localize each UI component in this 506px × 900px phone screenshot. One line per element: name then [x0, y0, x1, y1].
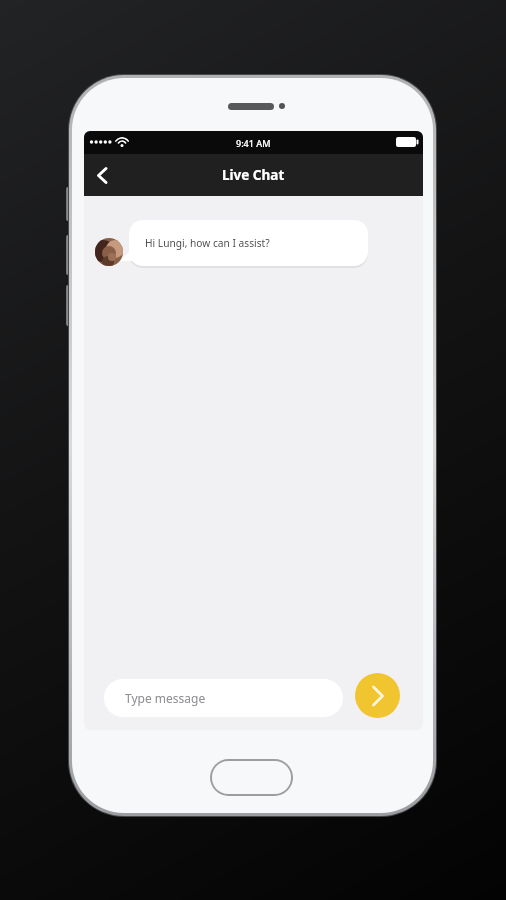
- staticText: 9:41 AM: [236, 137, 271, 149]
- staticText: Type message: [125, 690, 206, 706]
- button[interactable]: [86, 159, 118, 191]
- staticText: Hi Lungi, how can I assist?: [145, 236, 270, 250]
- button[interactable]: Type message: [104, 679, 343, 717]
- button[interactable]: Hi Lungi, how can I assist?: [129, 220, 368, 266]
- staticText: Live Chat: [222, 166, 285, 184]
- button[interactable]: [355, 673, 400, 718]
- button[interactable]: [210, 759, 293, 796]
